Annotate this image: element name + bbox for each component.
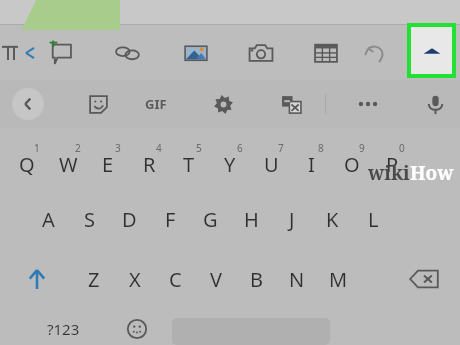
- button[interactable]: Shift: [14, 253, 60, 305]
- staticText: S: [84, 206, 95, 233]
- button[interactable]: E: [88, 133, 128, 187]
- button[interactable]: Insert link: [112, 38, 144, 68]
- staticText: 9: [359, 141, 365, 155]
- button[interactable]: B: [236, 253, 276, 305]
- button[interactable]: Translate: [276, 91, 306, 117]
- button[interactable]: ?123: [40, 312, 86, 345]
- staticText: wiki: [368, 160, 410, 186]
- button[interactable]: Insert image: [180, 38, 212, 68]
- button[interactable]: Add comment: [44, 38, 76, 68]
- button[interactable]: L: [353, 192, 393, 246]
- staticText: E: [102, 151, 114, 178]
- staticText: 2: [75, 141, 81, 155]
- staticText: B: [250, 266, 263, 293]
- staticText: V: [210, 266, 222, 293]
- staticText: F: [165, 206, 176, 233]
- button[interactable]: Undo: [360, 38, 392, 68]
- button[interactable]: More options: [352, 92, 384, 116]
- button[interactable]: I: [291, 133, 331, 187]
- staticText: H: [244, 206, 259, 233]
- button[interactable]: F: [150, 192, 190, 246]
- button[interactable]: N: [277, 253, 317, 305]
- staticText: P: [386, 151, 399, 178]
- button[interactable]: Take photo: [245, 38, 277, 68]
- button[interactable]: J: [272, 192, 312, 246]
- button[interactable]: M: [318, 253, 358, 305]
- button[interactable]: Back: [12, 88, 44, 120]
- staticText: A: [42, 206, 55, 233]
- button[interactable]: Emoji: [120, 312, 154, 345]
- button[interactable]: T: [169, 133, 209, 187]
- staticText: G: [203, 206, 218, 233]
- staticText: Q: [19, 151, 35, 178]
- button[interactable]: U: [251, 133, 291, 187]
- button[interactable]: W: [48, 133, 88, 187]
- staticText: O: [344, 151, 360, 178]
- staticText: T: [183, 151, 195, 178]
- staticText: N: [289, 266, 305, 293]
- button[interactable]: Insert table: [310, 38, 342, 68]
- button[interactable]: C: [155, 253, 195, 305]
- staticText: C: [169, 266, 182, 293]
- button[interactable]: Voice input: [420, 91, 450, 117]
- button[interactable]: Q: [7, 133, 47, 187]
- staticText: 7: [278, 141, 284, 155]
- staticText: K: [326, 206, 339, 233]
- button[interactable]: V: [196, 253, 236, 305]
- button[interactable]: K: [312, 192, 352, 246]
- staticText: Y: [224, 151, 236, 178]
- staticText: 8: [318, 141, 324, 155]
- staticText: W: [59, 151, 78, 178]
- button[interactable]: P: [372, 133, 412, 187]
- button[interactable]: Collapse toolbar: [411, 27, 452, 74]
- staticText: D: [122, 206, 137, 233]
- button[interactable]: Backspace: [400, 253, 448, 305]
- button[interactable]: H: [231, 192, 271, 246]
- staticText: 1: [34, 141, 40, 155]
- staticText: L: [368, 206, 379, 233]
- button[interactable]: Stickers: [83, 91, 113, 117]
- button[interactable]: GIF: [138, 92, 174, 116]
- staticText: 5: [196, 141, 202, 155]
- staticText: R: [143, 151, 156, 178]
- button[interactable]: X: [115, 253, 155, 305]
- button[interactable]: O: [332, 133, 372, 187]
- staticText: ?123: [47, 319, 80, 339]
- staticText: J: [289, 206, 295, 233]
- staticText: Z: [88, 266, 100, 293]
- staticText: 3: [115, 141, 121, 155]
- staticText: 4: [156, 141, 162, 155]
- staticText: M: [329, 266, 348, 293]
- button[interactable]: G: [190, 192, 230, 246]
- staticText: GIF: [145, 95, 167, 113]
- staticText: X: [129, 266, 141, 293]
- staticText: U: [264, 151, 279, 178]
- staticText: 6: [237, 141, 243, 155]
- button[interactable]: A: [28, 192, 68, 246]
- button[interactable]: Z: [74, 253, 114, 305]
- button[interactable]: Paragraph styles: [0, 39, 30, 67]
- staticText: I: [308, 151, 315, 178]
- button[interactable]: D: [109, 192, 149, 246]
- staticText: How: [410, 160, 454, 186]
- button[interactable]: R: [129, 133, 169, 187]
- staticText: 0: [399, 141, 405, 155]
- button[interactable]: S: [69, 192, 109, 246]
- button[interactable]: Y: [210, 133, 250, 187]
- button[interactable]: Settings: [208, 91, 238, 117]
